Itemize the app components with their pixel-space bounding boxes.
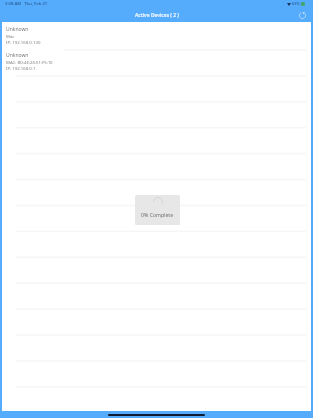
button[interactable]: Unknown [2, 24, 311, 50]
staticText: IP: 192.168.0.130 [6, 39, 41, 45]
staticText: Unknown [6, 52, 29, 59]
button[interactable] [2, 180, 311, 206]
staticText: 0% Complete [141, 211, 174, 218]
staticText: Unknown [6, 26, 29, 33]
button[interactable]: Unknown [2, 50, 311, 76]
staticText: Active Devices ( 2 ) [135, 12, 179, 19]
staticText: 3:08 AM Thu, Feb 21 [5, 1, 48, 7]
staticText: Mac [6, 33, 15, 39]
staticText: MAC: B0:4E:26:51:F5:1E [6, 59, 53, 65]
button[interactable]: Refresh [298, 11, 307, 20]
staticText: 63% [292, 1, 300, 6]
button[interactable] [2, 206, 311, 232]
staticText: IP: 192.168.0.1 [6, 65, 36, 71]
